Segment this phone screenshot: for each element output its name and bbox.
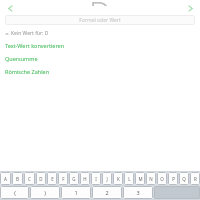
button[interactable]: 2	[92, 186, 122, 199]
button[interactable]: D	[36, 172, 46, 185]
button[interactable]: )	[30, 186, 60, 199]
staticText: H	[83, 176, 87, 182]
button[interactable]: M	[135, 172, 145, 185]
button[interactable]: I	[91, 172, 101, 185]
button[interactable]: J	[102, 172, 112, 185]
staticText: N	[149, 176, 153, 182]
button[interactable]: 3	[123, 186, 153, 199]
staticText: 1	[74, 189, 78, 196]
button[interactable]: (	[0, 186, 29, 199]
button[interactable]: Römische Zahlen	[5, 68, 195, 75]
button[interactable]: Text-Wert konvertieren	[5, 42, 195, 49]
button[interactable]: O	[157, 172, 167, 185]
button[interactable]: Vorheriges	[4, 2, 16, 14]
staticText: L	[128, 176, 131, 182]
staticText: Formel oder Wert	[79, 17, 121, 24]
button[interactable]: Quersumme	[5, 55, 195, 62]
button[interactable]: F	[58, 172, 68, 185]
button[interactable]: Kein Wert für: D	[5, 30, 195, 37]
staticText: Römische Zahlen	[5, 68, 50, 75]
button[interactable]: G	[69, 172, 79, 185]
staticText: Q	[182, 176, 186, 182]
button[interactable]: B	[12, 172, 23, 185]
button[interactable]: L	[124, 172, 134, 185]
button[interactable]: N	[146, 172, 156, 185]
staticText: O	[160, 176, 164, 182]
button[interactable]: E	[47, 172, 57, 185]
button[interactable]: Q	[179, 172, 189, 185]
button[interactable]: 1	[61, 186, 91, 199]
staticText: I	[95, 176, 97, 182]
staticText: F	[62, 176, 65, 182]
staticText: Quersumme	[5, 55, 38, 62]
staticText: D	[89, 0, 111, 6]
staticText: B	[16, 176, 19, 182]
staticText: R	[194, 176, 197, 182]
staticText: 2	[105, 189, 109, 196]
button[interactable]: Formel oder Wert	[5, 15, 195, 25]
staticText: K	[117, 176, 120, 182]
staticText: (	[14, 189, 16, 196]
staticText: G	[72, 176, 76, 182]
staticText: D	[39, 176, 43, 182]
button[interactable]: K	[113, 172, 123, 185]
staticText: A	[4, 176, 7, 182]
staticText: P	[172, 176, 175, 182]
staticText: Kein Wert für: D	[11, 30, 49, 37]
button[interactable]: A	[0, 172, 11, 185]
button[interactable]: H	[80, 172, 90, 185]
button[interactable]: Nächstes	[184, 2, 196, 14]
staticText: C	[28, 176, 31, 182]
staticText: E	[51, 176, 54, 182]
staticText: M	[138, 176, 143, 182]
button[interactable]: P	[168, 172, 178, 185]
button[interactable]: Leerzeichen	[154, 186, 200, 199]
staticText: )	[44, 189, 46, 196]
button[interactable]: R	[190, 172, 200, 185]
staticText: J	[106, 176, 108, 182]
staticText: Text-Wert konvertieren	[5, 42, 65, 49]
staticText: 3	[136, 189, 140, 196]
button[interactable]: C	[24, 172, 35, 185]
